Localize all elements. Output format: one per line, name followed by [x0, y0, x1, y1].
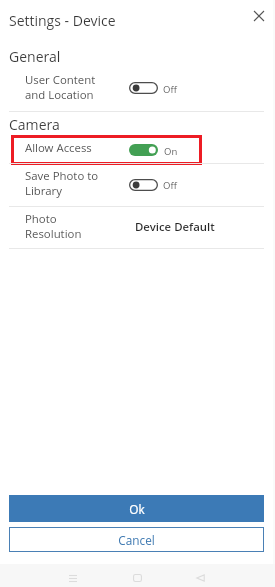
button[interactable] — [9, 207, 264, 248]
staticText: Allow Access — [25, 140, 92, 156]
button[interactable] — [2, 2, 242, 32]
staticText: Off — [163, 83, 177, 96]
staticText: Ok — [129, 501, 145, 517]
button[interactable] — [11, 135, 202, 165]
staticText: General — [9, 47, 61, 66]
button[interactable]: Back — [189, 567, 211, 587]
staticText: Settings - Device — [9, 11, 116, 30]
button[interactable]: Cancel — [9, 527, 264, 552]
staticText: Device Default — [135, 219, 215, 235]
button[interactable] — [9, 68, 264, 111]
button[interactable] — [9, 165, 264, 206]
staticText: Off — [163, 179, 177, 192]
button[interactable]: Close — [248, 5, 269, 26]
button[interactable]: Ok — [9, 495, 264, 522]
button[interactable]: Recent apps — [62, 567, 84, 587]
staticText: Cancel — [118, 532, 155, 548]
staticText: Camera — [9, 115, 60, 134]
staticText: Save Photo to Library — [25, 168, 99, 198]
staticText: Photo Resolution — [25, 211, 82, 241]
staticText: On — [164, 145, 178, 158]
staticText: User Content and Location — [25, 72, 96, 102]
button[interactable]: Home — [126, 567, 148, 587]
